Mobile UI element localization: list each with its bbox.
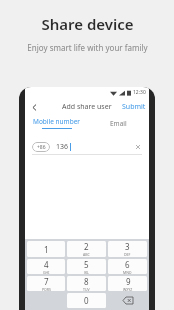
button[interactable]: 6 [108, 259, 147, 274]
button[interactable]: 4 [27, 259, 65, 274]
staticText: GHI [43, 270, 50, 274]
button[interactable]: 8 [67, 276, 106, 291]
button[interactable]: Back [27, 100, 41, 114]
button[interactable]: 2 [67, 241, 106, 257]
button[interactable]: +86 [32, 142, 50, 152]
button[interactable]: 0 [67, 293, 106, 308]
staticText: 5 [84, 259, 89, 270]
staticText: Mobile number [33, 117, 80, 126]
staticText: 1 [44, 244, 49, 255]
staticText: 9 [126, 276, 131, 287]
staticText: JKL [84, 270, 89, 274]
button[interactable]: 3 [108, 241, 147, 257]
button[interactable]: Submit [122, 102, 146, 112]
staticText: 6 [125, 259, 130, 270]
button[interactable]: Backspace [107, 292, 148, 309]
staticText: 3 [125, 241, 130, 252]
staticText: 136 [56, 142, 69, 152]
staticText: WXYZ [123, 287, 133, 291]
staticText: Submit [122, 102, 146, 112]
staticText: 8 [84, 276, 89, 287]
button[interactable]: 1 [27, 241, 65, 257]
staticText: Share device [41, 14, 134, 34]
staticText: 2 [84, 241, 89, 252]
staticText: Email [110, 119, 127, 128]
button[interactable]: Mobile number [25, 115, 87, 131]
button[interactable]: Clear [133, 142, 142, 151]
staticText: PQRS [42, 287, 51, 291]
button[interactable]: 5 [67, 259, 106, 274]
button[interactable]: 7 [27, 276, 65, 291]
staticText: 0 [84, 295, 89, 306]
staticText: TUV [83, 287, 90, 291]
staticText: ABC [83, 252, 90, 257]
staticText: MNO [123, 270, 132, 274]
staticText: DEF [124, 252, 131, 257]
staticText: Add share user [62, 102, 112, 112]
button[interactable]: Email [87, 115, 149, 131]
staticText: 4 [44, 259, 49, 270]
button[interactable]: 9 [108, 276, 147, 291]
staticText: Enjoy smart life with your family [27, 42, 148, 53]
staticText: +86 [37, 144, 46, 151]
staticText: 7 [44, 276, 49, 287]
staticText: 12:30 [133, 89, 146, 96]
